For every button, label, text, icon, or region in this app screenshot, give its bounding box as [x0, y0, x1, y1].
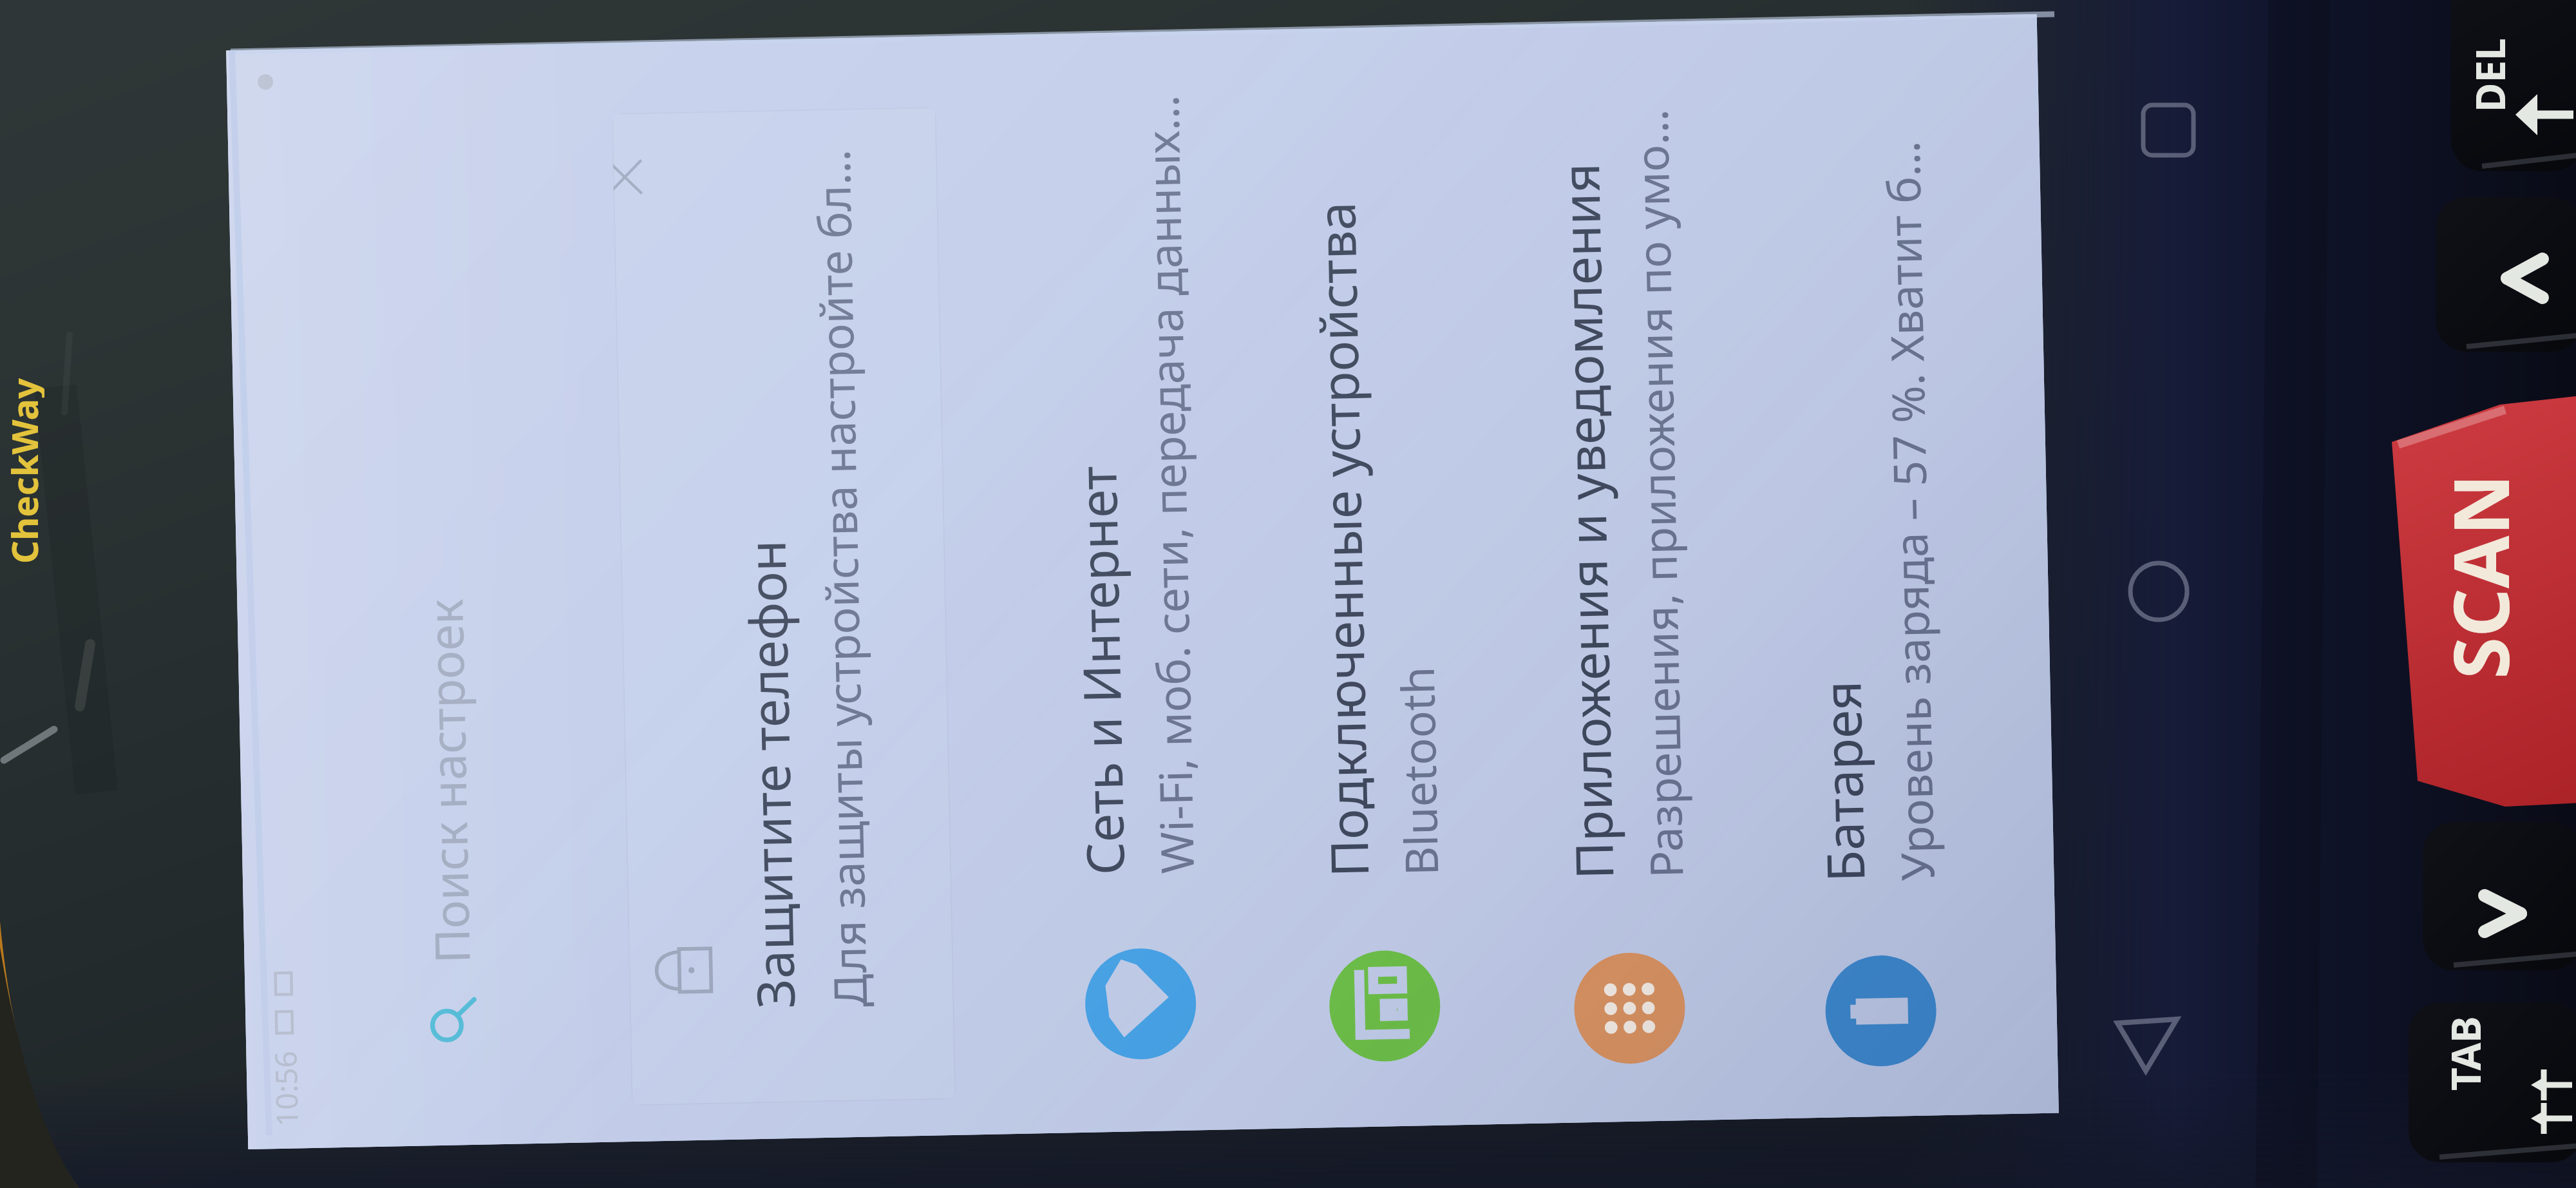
staticText: TAB: [2438, 1016, 2492, 1091]
button[interactable]: TAB: [2430, 989, 2501, 1118]
button[interactable]: Приложения и уведомления: [1491, 34, 1751, 1138]
button[interactable]: Закрыть: [612, 107, 956, 1106]
staticText: Разрешения, приложения по умо…: [1619, 108, 1696, 879]
button[interactable]: Закрыть: [613, 141, 661, 213]
staticText: Bluetooth: [1386, 666, 1451, 876]
staticText: 10:56: [265, 1050, 307, 1127]
button[interactable]: SCAN: [2418, 409, 2541, 744]
button[interactable]: DEL: [2454, 11, 2525, 140]
staticText: Приложения и уведомления: [1544, 162, 1628, 880]
staticText: Поиск настроек: [412, 598, 484, 964]
staticText: Уровень заряда – 57 %. Хватит б…: [1871, 140, 1947, 881]
staticText: SCAN: [2428, 474, 2532, 679]
staticText: DEL: [2463, 38, 2517, 112]
button[interactable]: Батарея: [1742, 37, 2003, 1141]
staticText: Wi-Fi, моб. сети, передача данных…: [1130, 94, 1207, 874]
staticText: CheckWay: [0, 378, 44, 564]
button[interactable]: Сеть и Интернет: [1002, 30, 1262, 1134]
button[interactable]: Поиск настроек: [365, 37, 522, 1138]
staticText: Сеть и Интернет: [1061, 465, 1139, 876]
staticText: Батарея: [1805, 680, 1880, 883]
staticText: Для защиты устройства настройте бл…: [801, 149, 880, 1008]
staticText: Защитите телефон: [730, 539, 810, 1009]
staticText: Подключенные устройства: [1300, 201, 1383, 878]
button[interactable]: Подключенные устройства: [1246, 32, 1507, 1136]
